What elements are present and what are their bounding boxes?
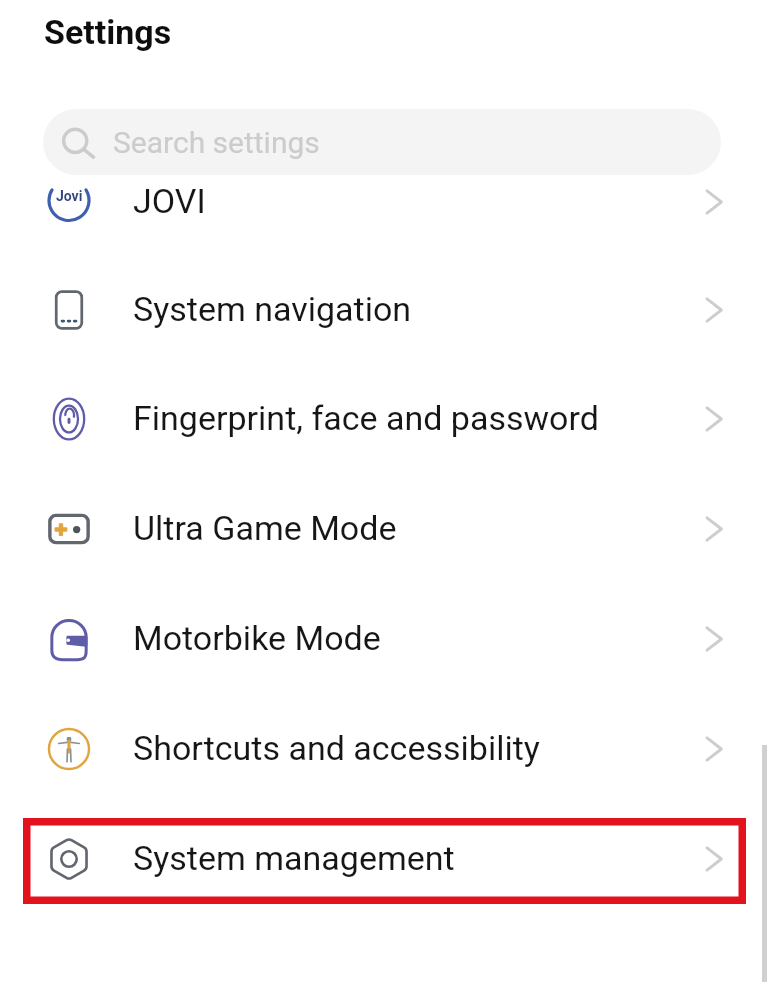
button[interactable]: Shortcuts and accessibility bbox=[0, 694, 769, 804]
staticText: Fingerprint, face and password bbox=[133, 398, 599, 438]
staticText: Motorbike Mode bbox=[133, 618, 381, 658]
staticText: Ultra Game Mode bbox=[133, 508, 397, 548]
staticText: Search settings bbox=[113, 125, 320, 160]
button[interactable]: Ultra Game Mode bbox=[0, 474, 769, 584]
staticText: Jovi bbox=[56, 188, 83, 204]
button[interactable]: Jovi bbox=[0, 177, 769, 257]
button[interactable]: System management bbox=[0, 804, 769, 914]
staticText: Shortcuts and accessibility bbox=[133, 728, 540, 768]
button[interactable]: System navigation bbox=[0, 255, 769, 365]
button[interactable]: Fingerprint, face and password bbox=[0, 364, 769, 474]
staticText: Settings bbox=[44, 12, 172, 52]
button[interactable]: Motorbike Mode bbox=[0, 584, 769, 694]
staticText: System management bbox=[133, 838, 455, 878]
button[interactable]: Search settings bbox=[43, 109, 721, 175]
staticText: System navigation bbox=[133, 289, 412, 329]
staticText: JOVI bbox=[133, 181, 206, 221]
